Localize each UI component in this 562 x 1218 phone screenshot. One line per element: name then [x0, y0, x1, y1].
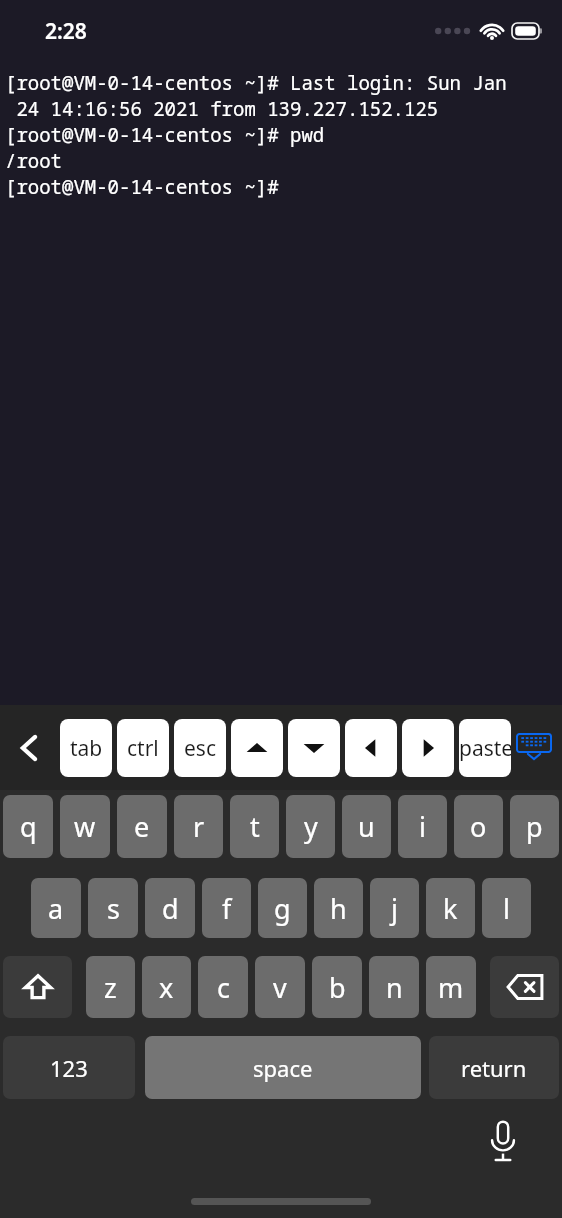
button[interactable]: 123 — [3, 1036, 135, 1099]
button[interactable]: esc — [174, 719, 226, 777]
staticText: f — [222, 890, 232, 927]
staticText: d — [162, 890, 179, 927]
button[interactable]: Dictate — [476, 1114, 530, 1168]
button[interactable]: Hide keyboard — [506, 705, 562, 790]
button[interactable]: t — [230, 795, 279, 858]
button[interactable]: return — [429, 1036, 559, 1099]
staticText: space — [253, 1053, 313, 1083]
button[interactable]: l — [482, 878, 531, 938]
button[interactable]: paste — [459, 719, 511, 777]
button[interactable]: d — [145, 878, 195, 938]
staticText: 24 14:16:56 2021 from 139.227.152.125 — [5, 96, 439, 122]
staticText: p — [526, 808, 543, 845]
button[interactable]: Up — [231, 719, 283, 777]
button[interactable]: j — [370, 878, 419, 938]
button[interactable]: ctrl — [117, 719, 169, 777]
button[interactable]: c — [198, 956, 248, 1018]
button[interactable]: y — [286, 795, 335, 858]
staticText: m — [438, 969, 464, 1006]
staticText: b — [329, 969, 346, 1006]
staticText: ctrl — [127, 734, 159, 763]
button[interactable]: Left — [345, 719, 397, 777]
staticText: tab — [70, 734, 103, 763]
staticText: l — [503, 890, 510, 927]
button[interactable]: k — [426, 878, 475, 938]
button[interactable]: p — [510, 795, 559, 858]
staticText: s — [107, 890, 120, 927]
button[interactable]: f — [202, 878, 251, 938]
staticText: a — [48, 890, 64, 927]
staticText: o — [470, 808, 487, 845]
staticText: 123 — [50, 1053, 88, 1083]
staticText: t — [250, 808, 260, 845]
button[interactable]: b — [312, 956, 362, 1018]
staticText: paste — [459, 734, 511, 763]
button[interactable]: Right — [402, 719, 454, 777]
button[interactable]: v — [255, 956, 305, 1018]
staticText: [root@VM-0-14-centos ~]# Last login: Sun… — [5, 70, 507, 96]
staticText: w — [74, 808, 96, 845]
staticText: esc — [184, 734, 216, 763]
button[interactable]: Down — [288, 719, 340, 777]
staticText: 2:28 — [45, 17, 87, 46]
button[interactable]: e — [117, 795, 167, 858]
staticText: u — [358, 808, 375, 845]
button[interactable]: x — [142, 956, 191, 1018]
staticText: n — [386, 969, 403, 1006]
button[interactable]: Shift — [3, 956, 72, 1018]
staticText: return — [461, 1053, 527, 1083]
button[interactable]: r — [174, 795, 223, 858]
button[interactable]: o — [454, 795, 503, 858]
staticText: k — [443, 890, 458, 927]
button[interactable]: space — [145, 1036, 421, 1099]
button[interactable]: m — [426, 956, 476, 1018]
button[interactable]: a — [31, 878, 81, 938]
button[interactable]: g — [258, 878, 307, 938]
button[interactable]: s — [88, 878, 138, 938]
staticText: y — [304, 808, 318, 845]
button[interactable]: h — [314, 878, 363, 938]
staticText: z — [104, 969, 117, 1006]
staticText: [root@VM-0-14-centos ~]# — [5, 174, 279, 200]
button[interactable]: tab — [60, 719, 112, 777]
staticText: v — [273, 969, 287, 1006]
staticText: q — [20, 808, 37, 845]
button[interactable]: n — [369, 956, 419, 1018]
button[interactable]: w — [60, 795, 110, 858]
staticText: /root — [5, 148, 63, 174]
staticText: e — [134, 808, 150, 845]
staticText: x — [159, 969, 174, 1006]
staticText: j — [391, 890, 398, 927]
staticText: r — [193, 808, 205, 845]
button[interactable]: q — [3, 795, 53, 858]
button[interactable]: Backspace — [490, 956, 559, 1018]
button[interactable]: u — [342, 795, 391, 858]
button[interactable]: i — [398, 795, 447, 858]
staticText: [root@VM-0-14-centos ~]# pwd — [5, 122, 325, 148]
staticText: g — [274, 890, 291, 927]
button[interactable]: Back — [0, 705, 58, 790]
staticText: c — [217, 969, 230, 1006]
button[interactable]: z — [86, 956, 135, 1018]
staticText: i — [419, 808, 426, 845]
staticText: h — [330, 890, 347, 927]
